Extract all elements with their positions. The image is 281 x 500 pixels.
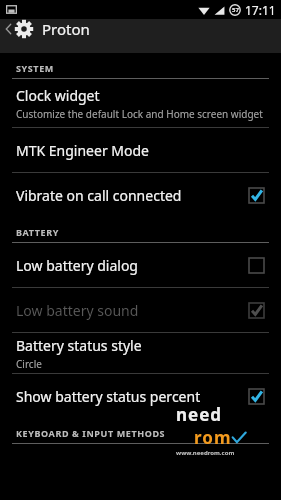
staticText: need [176,403,223,426]
button[interactable]: Vibrate on call connected [0,173,281,217]
button[interactable]: Battery status style [0,333,281,373]
button[interactable]: Show battery status percent [0,374,281,418]
button[interactable]: Checked [245,299,267,321]
button[interactable]: Clock widget [0,79,281,127]
staticText: Clock widget [16,86,100,105]
staticText: SYSTEM [16,62,54,74]
staticText: 57 [232,6,239,14]
staticText: rom [194,426,232,449]
staticText: KEYBOARD & INPUT METHODS [16,427,166,439]
button[interactable]: Checked [245,184,267,206]
staticText: Low battery dialog [16,256,138,275]
staticText: BATTERY [16,226,59,238]
button[interactable]: Checked [245,385,267,407]
staticText: Customize the default Lock and Home scre… [16,107,263,121]
staticText: MTK Engineer Mode [16,141,149,160]
staticText: Vibrate on call connected [16,186,182,205]
staticText: www.needrom.com [176,449,235,457]
button[interactable]: MTK Engineer Mode [0,128,281,172]
staticText: Low battery sound [16,301,139,320]
button[interactable]: Unchecked [245,254,267,276]
staticText: Battery status style [16,336,142,355]
staticText: 17:11 [245,2,276,18]
staticText: Proton [42,19,90,39]
button[interactable]: Navigate up [0,19,281,39]
staticText: Show battery status percent [16,387,201,406]
staticText: Circle [16,357,42,371]
button[interactable]: Low battery dialog [0,243,281,287]
button[interactable]: Low battery sound [0,288,281,332]
